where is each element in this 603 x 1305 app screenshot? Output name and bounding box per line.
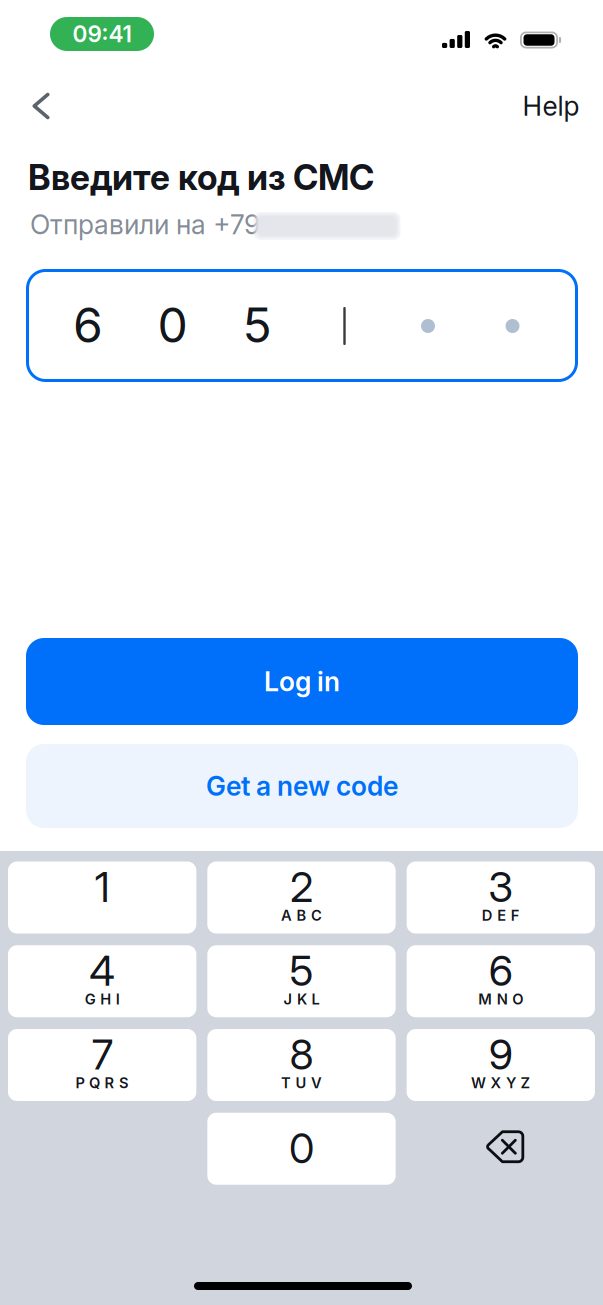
staticText: 4 <box>89 946 115 996</box>
staticText: C <box>311 907 322 924</box>
staticText: S <box>119 1074 129 1092</box>
button[interactable]: 2 <box>207 861 396 933</box>
staticText: 6 <box>73 296 103 354</box>
button[interactable]: Get a new code <box>26 744 578 828</box>
staticText: R <box>104 1074 114 1092</box>
button[interactable]: 8 <box>207 1029 396 1101</box>
staticText: E <box>497 907 506 924</box>
staticText: Введите код из СМС <box>28 156 374 198</box>
staticText: 0 <box>289 1123 314 1173</box>
button[interactable]: 5 <box>207 945 396 1017</box>
staticText: J <box>283 990 292 1008</box>
button[interactable]: Help <box>506 78 596 134</box>
button[interactable]: 3 <box>407 861 595 933</box>
staticText: F <box>511 907 520 924</box>
staticText: 3 <box>488 862 513 912</box>
staticText: N <box>497 990 508 1008</box>
button[interactable]: Delete <box>407 1113 595 1185</box>
staticText: V <box>311 1074 322 1092</box>
staticText: D <box>482 907 493 924</box>
staticText: Help <box>522 90 579 122</box>
button[interactable]: 6 <box>407 945 595 1017</box>
staticText: 9 <box>489 1029 513 1079</box>
staticText: 2 <box>290 862 313 912</box>
staticText: K <box>297 990 307 1008</box>
staticText: A <box>281 907 292 924</box>
staticText: 6 <box>489 946 513 996</box>
staticText: 7 <box>92 1029 113 1079</box>
staticText: P <box>75 1074 84 1092</box>
staticText: I <box>116 990 120 1008</box>
staticText: M <box>478 990 492 1008</box>
staticText: 8 <box>289 1029 313 1079</box>
staticText: X <box>491 1074 502 1092</box>
staticText: Y <box>506 1074 516 1092</box>
staticText: Z <box>521 1074 531 1092</box>
staticText: 09:41 <box>72 20 131 48</box>
button[interactable]: 1 <box>8 861 196 933</box>
staticText: 5 <box>242 296 271 354</box>
staticText: T <box>281 1074 291 1092</box>
staticText: W <box>471 1074 486 1092</box>
button[interactable]: 7 <box>8 1029 196 1101</box>
button[interactable]: 4 <box>8 945 196 1017</box>
staticText: Q <box>89 1074 100 1092</box>
staticText: O <box>512 990 523 1008</box>
button[interactable]: Back <box>13 78 69 134</box>
staticText: H <box>100 990 111 1008</box>
staticText: 0 <box>157 296 187 354</box>
button[interactable]: 0 <box>207 1113 396 1185</box>
staticText: U <box>295 1074 306 1092</box>
staticText: 5 <box>289 946 313 996</box>
staticText: L <box>311 990 319 1008</box>
staticText: G <box>85 990 96 1008</box>
button[interactable]: 9 <box>407 1029 595 1101</box>
staticText: Get a new code <box>206 770 398 802</box>
staticText: Отправили на +79 <box>30 208 260 241</box>
button[interactable]: Log in <box>26 638 578 725</box>
staticText: Log in <box>264 665 340 698</box>
staticText: 1 <box>95 862 110 912</box>
staticText: B <box>296 907 306 924</box>
